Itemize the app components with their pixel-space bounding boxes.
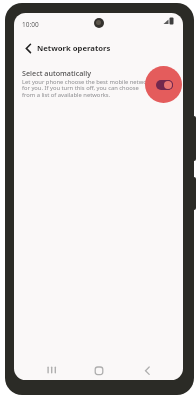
staticText: Network operators: [37, 43, 111, 53]
button[interactable]: [21, 40, 37, 58]
button[interactable]: [88, 360, 110, 380]
staticText: for you. If you turn this off, you can c…: [22, 84, 139, 92]
button[interactable]: [136, 360, 158, 380]
button[interactable]: Select automatically: [14, 57, 183, 109]
staticText: Let your phone choose the best mobile ne…: [22, 78, 153, 86]
staticText: from a list of available networks.: [22, 91, 111, 99]
staticText: 10:00: [22, 20, 39, 29]
staticText: Select automatically: [22, 68, 91, 78]
button[interactable]: [40, 360, 62, 380]
